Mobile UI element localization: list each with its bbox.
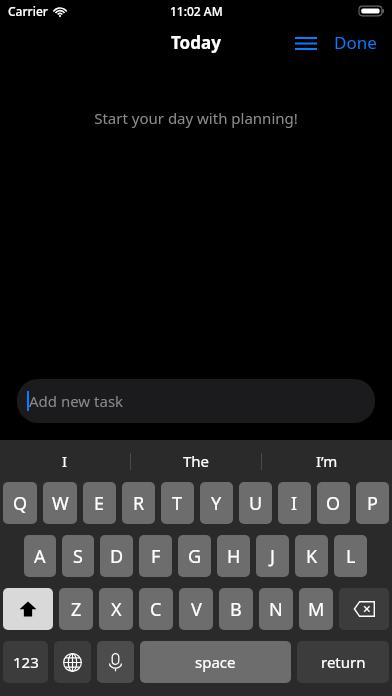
button[interactable]: O — [317, 482, 350, 524]
staticText: Start your day with planning! — [0, 108, 392, 128]
button[interactable]: U — [239, 482, 272, 524]
button[interactable]: return — [297, 641, 389, 683]
button[interactable]: V — [179, 588, 213, 630]
button[interactable]: The — [131, 440, 261, 482]
button[interactable]: A — [24, 535, 56, 577]
button[interactable]: X — [99, 588, 133, 630]
button[interactable]: I — [278, 482, 311, 524]
staticText: L — [346, 544, 356, 569]
button[interactable]: H — [217, 535, 250, 577]
button[interactable]: Done — [331, 25, 380, 60]
button[interactable]: K — [295, 535, 328, 577]
button[interactable]: G — [178, 535, 211, 577]
staticText: W — [52, 491, 69, 516]
staticText: A — [34, 544, 46, 569]
staticText: H — [227, 544, 241, 569]
staticText: K — [306, 544, 318, 569]
button[interactable]: R — [122, 482, 155, 524]
staticText: O — [326, 491, 341, 516]
staticText: I — [291, 491, 298, 516]
staticText: N — [269, 597, 283, 622]
button[interactable]: space — [140, 641, 291, 683]
staticText: X — [111, 597, 122, 622]
staticText: Today — [171, 31, 221, 54]
staticText: The — [183, 451, 210, 471]
button[interactable]: Change keyboard language — [54, 641, 91, 683]
button[interactable]: Z — [59, 588, 93, 630]
button[interactable]: J — [256, 535, 289, 577]
button[interactable]: Y — [200, 482, 233, 524]
button[interactable]: N — [259, 588, 293, 630]
button[interactable]: 123 — [3, 641, 48, 683]
staticText: Carrier — [8, 3, 48, 19]
staticText: J — [270, 544, 275, 569]
staticText: V — [191, 597, 202, 622]
staticText: return — [321, 652, 366, 672]
button[interactable]: B — [219, 588, 253, 630]
staticText: 123 — [13, 652, 39, 672]
button[interactable]: Menu — [289, 27, 323, 59]
staticText: R — [133, 491, 145, 516]
staticText: space — [195, 652, 236, 672]
button[interactable]: M — [299, 588, 333, 630]
button[interactable]: Q — [3, 482, 37, 524]
staticText: I — [62, 451, 68, 471]
staticText: E — [94, 491, 105, 516]
staticText: Done — [334, 31, 377, 54]
staticText: Z — [71, 597, 82, 622]
staticText: Y — [211, 491, 222, 516]
staticText: S — [73, 544, 83, 569]
staticText: D — [110, 544, 124, 569]
staticText: M — [308, 597, 325, 622]
button[interactable]: T — [161, 482, 194, 524]
staticText: C — [150, 597, 162, 622]
button[interactable]: L — [334, 535, 367, 577]
button[interactable]: W — [43, 482, 77, 524]
staticText: I’m — [316, 451, 338, 471]
button[interactable]: C — [139, 588, 173, 630]
staticText: T — [172, 491, 183, 516]
button[interactable]: D — [100, 535, 133, 577]
staticText: F — [151, 544, 161, 569]
button[interactable]: I’m — [262, 440, 392, 482]
button[interactable]: P — [356, 482, 389, 524]
staticText: Q — [13, 491, 28, 516]
button[interactable]: Shift — [3, 588, 53, 630]
staticText: U — [249, 491, 263, 516]
staticText: 11:02 AM — [170, 3, 223, 19]
staticText: B — [230, 597, 242, 622]
button[interactable]: F — [139, 535, 172, 577]
button[interactable]: Backspace — [339, 588, 389, 630]
button[interactable]: S — [62, 535, 94, 577]
staticText: Add new task — [29, 391, 124, 411]
staticText: G — [188, 544, 202, 569]
button[interactable]: E — [83, 482, 116, 524]
staticText: P — [367, 491, 378, 516]
button[interactable]: I — [0, 440, 130, 482]
button[interactable]: Add new task — [17, 379, 375, 423]
button[interactable]: Dictate — [97, 641, 134, 683]
